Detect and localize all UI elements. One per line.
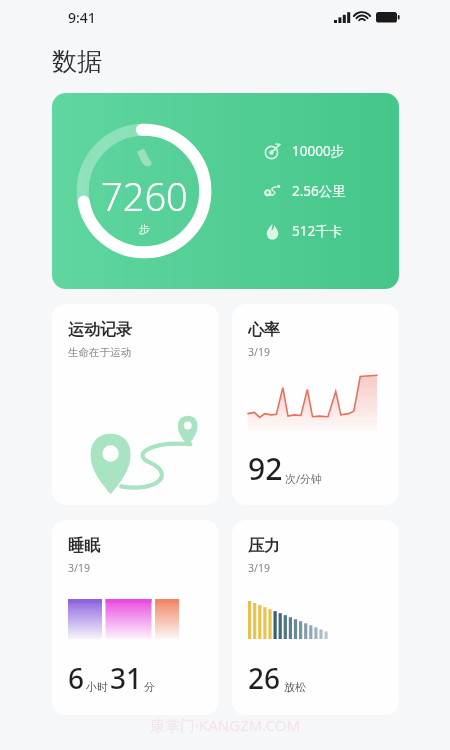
staticText: 92 bbox=[248, 448, 283, 489]
staticText: 10000步 bbox=[292, 142, 345, 160]
staticText: 2.56公里 bbox=[292, 182, 346, 200]
staticText: 康掌门·KANGZM.COM bbox=[0, 715, 450, 734]
staticText: 512千卡 bbox=[292, 222, 343, 240]
staticText: 放松 bbox=[284, 680, 306, 694]
staticText: 31 bbox=[110, 659, 143, 697]
staticText: 数据 bbox=[52, 46, 102, 77]
button[interactable]: 运动记录 bbox=[52, 304, 219, 505]
staticText: 心率 bbox=[248, 320, 280, 340]
staticText: 3/19 bbox=[68, 561, 90, 575]
staticText: 3/19 bbox=[248, 561, 270, 575]
staticText: 运动记录 bbox=[68, 320, 132, 340]
staticText: 睡眠 bbox=[68, 536, 100, 556]
button[interactable]: 睡眠 bbox=[52, 520, 219, 715]
staticText: 步 bbox=[139, 222, 150, 236]
staticText: 9:41 bbox=[68, 8, 96, 27]
button[interactable]: 心率 bbox=[232, 304, 399, 505]
staticText: 6 bbox=[68, 659, 85, 697]
staticText: 3/19 bbox=[248, 345, 270, 359]
staticText: 26 bbox=[248, 659, 281, 697]
staticText: 压力 bbox=[248, 536, 280, 556]
staticText: 生命在于运动 bbox=[68, 346, 131, 359]
staticText: 7260 bbox=[101, 170, 188, 222]
button[interactable]: 压力 bbox=[232, 520, 399, 715]
staticText: 次/分钟 bbox=[285, 471, 323, 486]
staticText: 分 bbox=[144, 680, 155, 694]
staticText: 小时 bbox=[86, 680, 108, 694]
button[interactable]: 7260 bbox=[52, 93, 399, 289]
